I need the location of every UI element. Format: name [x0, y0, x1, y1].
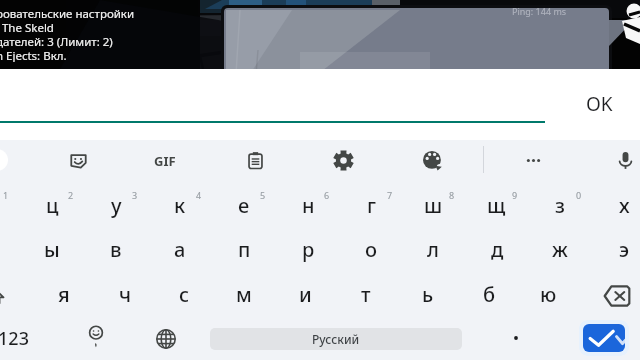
button[interactable]: е: [213, 183, 275, 227]
staticText: л: [427, 236, 439, 263]
staticText: ш: [424, 192, 443, 219]
button[interactable]: х: [593, 183, 640, 227]
button[interactable]: ц: [21, 183, 83, 227]
staticText: р: [302, 236, 315, 263]
staticText: н: [302, 192, 315, 219]
button[interactable]: щ: [465, 183, 527, 227]
button[interactable]: ж: [529, 227, 591, 271]
staticText: 0: [576, 189, 582, 201]
button[interactable]: т: [335, 272, 397, 316]
button[interactable]: э: [593, 227, 640, 271]
staticText: х: [619, 192, 630, 219]
staticText: 5: [260, 189, 266, 201]
button[interactable]: д: [466, 227, 528, 271]
button[interactable]: Google search: [0, 149, 8, 171]
button[interactable]: п: [213, 227, 275, 271]
button[interactable]: Clipboard: [246, 151, 265, 170]
staticText: ю: [540, 281, 557, 308]
staticText: в: [110, 236, 122, 263]
button[interactable]: о: [340, 227, 402, 271]
staticText: ч: [119, 281, 132, 308]
button[interactable]: я: [33, 272, 95, 316]
staticText: г: [367, 192, 376, 219]
staticText: OK: [586, 91, 613, 117]
button[interactable]: к: [149, 183, 211, 227]
staticText: д: [491, 236, 504, 263]
staticText: т: [361, 281, 371, 308]
staticText: Ping: 144 ms: [512, 5, 567, 17]
button[interactable]: н: [277, 183, 339, 227]
button[interactable]: Themes: [423, 151, 442, 170]
staticText: ы: [44, 236, 60, 263]
button[interactable]: Change language: [156, 329, 176, 349]
staticText: ровательские настройки: [0, 6, 135, 20]
staticText: е: [238, 192, 250, 219]
staticText: к: [174, 192, 186, 219]
button[interactable]: ч: [94, 272, 156, 316]
staticText: ж: [552, 236, 568, 263]
staticText: ц: [46, 192, 59, 219]
button[interactable]: б: [458, 272, 520, 316]
staticText: 3: [132, 189, 138, 201]
staticText: Русский: [312, 331, 360, 347]
staticText: с: [179, 281, 190, 308]
staticText: ?123: [0, 326, 29, 351]
button[interactable]: а: [149, 227, 211, 271]
staticText: 2: [68, 189, 74, 201]
button[interactable]: Settings: [333, 150, 354, 171]
button[interactable]: ю: [517, 272, 579, 316]
staticText: 8: [449, 189, 455, 201]
button[interactable]: л: [402, 227, 464, 271]
button[interactable]: г: [340, 183, 402, 227]
staticText: The Skeld: [0, 20, 54, 34]
staticText: э: [619, 236, 630, 263]
button[interactable]: GIF: [147, 152, 183, 168]
button[interactable]: з: [529, 183, 591, 227]
staticText: а: [174, 236, 186, 263]
staticText: б: [483, 281, 496, 308]
button[interactable]: Backspace: [603, 282, 631, 310]
staticText: и: [299, 281, 312, 308]
staticText: ь: [422, 281, 434, 308]
staticText: я: [58, 281, 70, 308]
button[interactable]: Shift: [0, 286, 7, 308]
button[interactable]: ?123: [0, 323, 37, 353]
button[interactable]: ш: [402, 183, 464, 227]
staticText: 7: [387, 189, 393, 201]
button[interactable]: Enter: [583, 324, 625, 352]
staticText: 1: [3, 189, 9, 201]
staticText: 4: [196, 189, 202, 201]
button[interactable]: ь: [397, 272, 459, 316]
button[interactable]: в: [85, 227, 147, 271]
button[interactable]: Русский: [210, 328, 462, 350]
button[interactable]: с: [153, 272, 215, 316]
button[interactable]: у: [85, 183, 147, 227]
staticText: з: [555, 192, 565, 219]
button[interactable]: ы: [21, 227, 83, 271]
button[interactable]: More options: [524, 151, 543, 170]
staticText: у: [111, 192, 122, 219]
staticText: м: [236, 281, 252, 308]
button[interactable]: OK: [570, 88, 628, 120]
button[interactable]: Voice input: [615, 150, 636, 171]
button[interactable]: Stickers: [69, 151, 88, 170]
staticText: n Ejects: Вкл.: [0, 48, 67, 62]
button[interactable]: Emoji: [83, 326, 109, 352]
staticText: дателей: 3 (Лимит: 2): [0, 34, 113, 48]
staticText: о: [365, 236, 378, 263]
staticText: щ: [487, 192, 506, 219]
staticText: п: [238, 236, 251, 263]
staticText: 6: [324, 189, 330, 201]
button[interactable]: р: [277, 227, 339, 271]
staticText: 9: [512, 189, 518, 201]
staticText: GIF: [154, 152, 176, 168]
button[interactable]: м: [213, 272, 275, 316]
button[interactable]: и: [274, 272, 336, 316]
button[interactable]: Period: [506, 324, 526, 344]
